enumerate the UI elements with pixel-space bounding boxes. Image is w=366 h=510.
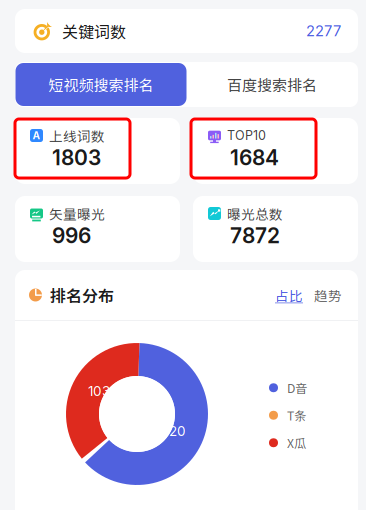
staticText: 1720: [156, 423, 186, 439]
staticText: TOP10: [227, 128, 266, 143]
button[interactable]: 短视频搜索排名: [15, 63, 186, 106]
staticText: 1684: [230, 145, 279, 170]
staticText: T条: [287, 406, 306, 424]
staticText: 2277: [306, 22, 341, 40]
button[interactable]: TOP10: [193, 118, 358, 184]
staticText: 996: [52, 223, 91, 248]
staticText: X瓜: [287, 434, 306, 452]
staticText: 占比: [275, 285, 303, 305]
button[interactable]: A: [15, 118, 180, 184]
button[interactable]: 占比: [275, 285, 303, 305]
staticText: 7872: [230, 223, 280, 248]
button[interactable]: 矢量曝光: [15, 196, 180, 262]
staticText: 上线词数: [49, 126, 105, 145]
staticText: 趋势: [314, 285, 342, 305]
button[interactable]: 百度搜索排名: [186, 63, 357, 106]
staticText: 曝光总数: [227, 204, 283, 223]
staticText: 关键词数: [62, 19, 126, 43]
staticText: D音: [287, 379, 307, 397]
staticText: A: [32, 129, 40, 142]
staticText: 百度搜索排名: [227, 74, 317, 95]
staticText: 排名分布: [50, 283, 114, 307]
staticText: 矢量曝光: [49, 204, 105, 223]
button[interactable]: 曝光总数: [193, 196, 358, 262]
button[interactable]: 趋势: [303, 285, 342, 305]
staticText: 1803: [52, 145, 101, 170]
button[interactable]: 关键词数: [15, 9, 358, 53]
staticText: 1033: [88, 383, 118, 399]
staticText: 短视频搜索排名: [48, 74, 153, 95]
